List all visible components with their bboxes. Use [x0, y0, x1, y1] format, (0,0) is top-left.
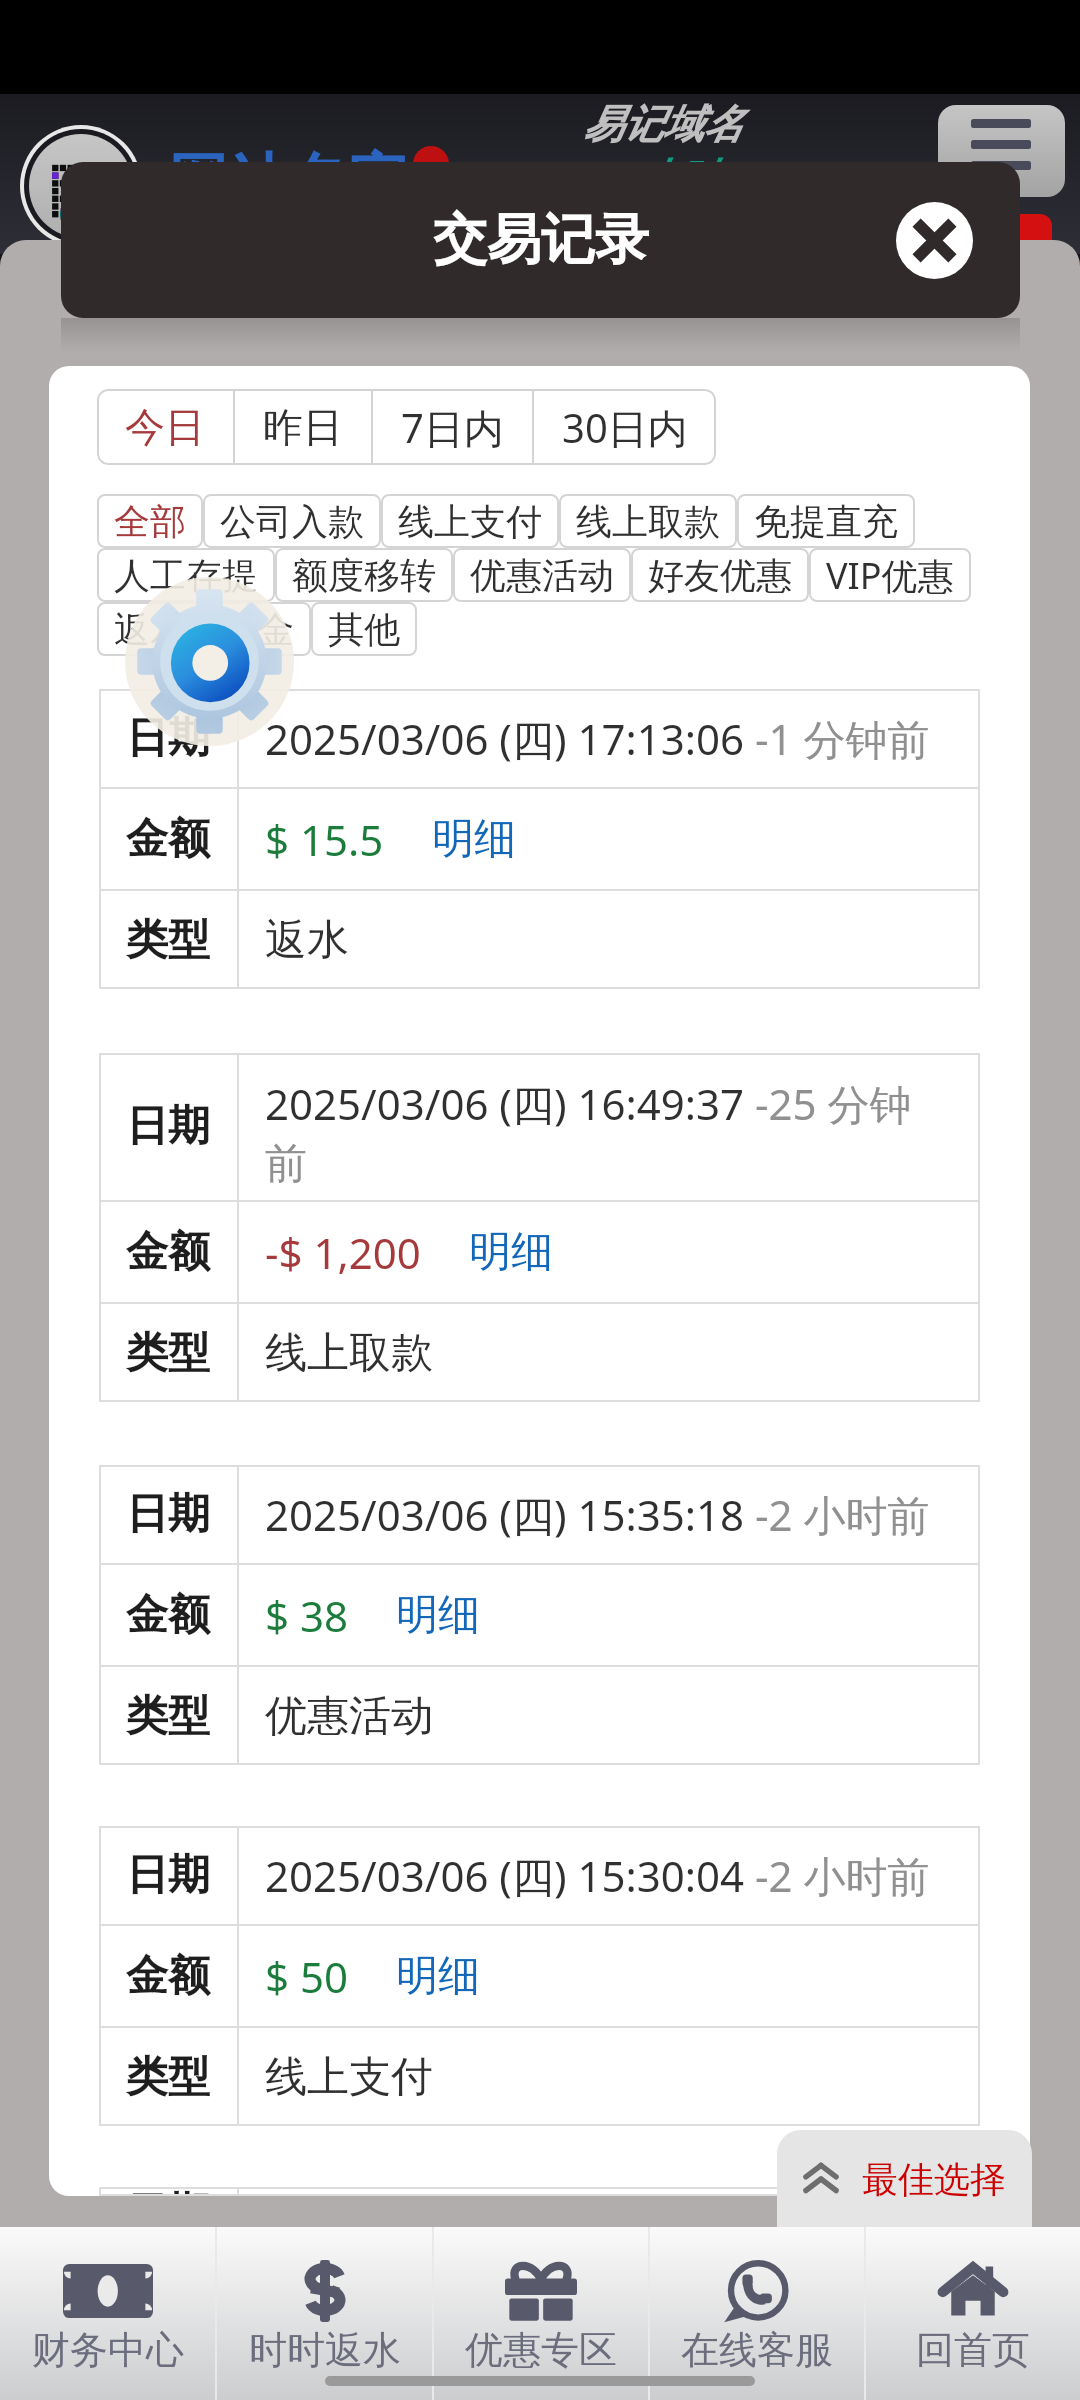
staticText: 2025/03/06 (四) 15:35:18 -2 小时前 [265, 1486, 930, 1543]
staticText: 明细 [432, 813, 516, 866]
button[interactable]: 返水优惠金 [97, 602, 311, 656]
staticText: 时时返水 [249, 2326, 401, 2374]
staticText: 易记域名 [583, 99, 743, 149]
button[interactable]: 明细 [396, 1950, 480, 2003]
staticText: 线上支付 [398, 499, 542, 544]
staticText: 2025/03/06 (四) 14:05:11 -3 小时前 [265, 2187, 930, 2196]
staticText: 类型 [126, 914, 210, 967]
staticText: 昨日 [263, 402, 343, 452]
button[interactable]: 最佳选择 [777, 2130, 1032, 2228]
button[interactable]: 昨日 [235, 389, 371, 465]
staticText: 7日内 [401, 400, 504, 455]
staticText: 金额 [126, 1226, 210, 1279]
button[interactable]: 优惠专区 [434, 2227, 648, 2400]
staticText: 线上支付 [265, 2051, 433, 2104]
staticText: 30日内 [562, 400, 688, 455]
button[interactable]: 人工存提 [97, 548, 275, 602]
staticText: 好友优惠 [648, 553, 792, 598]
button[interactable]: 今日 [97, 389, 233, 465]
staticText: 公司入款 [220, 499, 364, 544]
staticText: 明细 [469, 1226, 553, 1279]
staticText: 优惠活动 [470, 553, 614, 598]
staticText: 额度移转 [292, 553, 436, 598]
staticText: 日期 [126, 712, 210, 765]
staticText: 明细 [396, 1589, 480, 1642]
staticText: 24小时 [590, 149, 715, 204]
staticText: 日期 [126, 1100, 210, 1153]
staticText: 类型 [126, 1690, 210, 1743]
button[interactable]: 全部 [97, 494, 203, 548]
button[interactable]: Settings [125, 577, 294, 746]
staticText: 财务中心 [32, 2326, 184, 2374]
button[interactable]: 免提直充 [737, 494, 915, 548]
staticText: 网站名字 [168, 144, 408, 220]
staticText: -$ 1,200 [265, 1224, 421, 1281]
staticText: 金额 [126, 813, 210, 866]
staticText: 2025/03/06 (四) 16:49:37 -25 分钟 前 [265, 1075, 912, 1191]
button[interactable]: 回首页 [866, 2227, 1080, 2400]
button[interactable]: 优惠活动 [453, 548, 631, 602]
staticText: 类型 [126, 2051, 210, 2104]
staticText: 人工存提 [114, 553, 258, 598]
staticText: 交易记录 [433, 206, 649, 274]
staticText: 其他 [328, 607, 400, 652]
button[interactable]: 在线客服 [650, 2227, 864, 2400]
button[interactable]: 7日内 [373, 389, 532, 465]
staticText: 返水优惠金 [114, 607, 294, 652]
staticText: 2025/03/06 (四) 15:30:04 -2 小时前 [265, 1847, 930, 1904]
staticText: $ 50 [265, 1948, 348, 2005]
staticText: 回首页 [916, 2326, 1030, 2374]
staticText: 返水 [265, 914, 349, 967]
staticText: 金额 [126, 1950, 210, 2003]
button[interactable]: 时时返水 [217, 2227, 432, 2400]
button[interactable]: Menu [938, 105, 1065, 197]
button[interactable]: 公司入款 [203, 494, 381, 548]
staticText: 金额 [126, 1589, 210, 1642]
staticText: $ 15.5 [265, 811, 384, 868]
button[interactable]: 明细 [469, 1226, 553, 1279]
button[interactable]: 好友优惠 [631, 548, 809, 602]
staticText: 优惠活动 [265, 1690, 433, 1743]
staticText: VIP优惠 [826, 551, 954, 600]
staticText: 类型 [126, 1327, 210, 1380]
button[interactable]: Close [896, 202, 973, 279]
staticText: 线上取款 [265, 1327, 433, 1380]
staticText: 在线客服 [681, 2326, 833, 2374]
staticText: 日期 [126, 2187, 210, 2196]
button[interactable]: 线上支付 [381, 494, 559, 548]
staticText: $ 38 [265, 1587, 348, 1644]
staticText: 优惠专区 [465, 2326, 617, 2374]
staticText: 最佳选择 [862, 2157, 1006, 2202]
button[interactable]: 其他 [311, 602, 417, 656]
button[interactable]: 财务中心 [0, 2227, 215, 2400]
staticText: 2025/03/06 (四) 17:13:06 -1 分钟前 [265, 710, 930, 767]
button[interactable]: 30日内 [534, 389, 716, 465]
staticText: 线上取款 [576, 499, 720, 544]
staticText: 日期 [126, 1488, 210, 1541]
staticText: 免提直充 [754, 499, 898, 544]
staticText: 今日 [125, 402, 205, 452]
staticText: 明细 [396, 1950, 480, 2003]
staticText: MOBI [59, 203, 104, 225]
button[interactable]: VIP优惠 [809, 548, 971, 602]
staticText: 全部 [114, 499, 186, 544]
button[interactable]: 明细 [432, 813, 516, 866]
button[interactable]: 线上取款 [559, 494, 737, 548]
button[interactable]: 明细 [396, 1589, 480, 1642]
staticText: 日期 [126, 1849, 210, 1902]
button[interactable]: 额度移转 [275, 548, 453, 602]
